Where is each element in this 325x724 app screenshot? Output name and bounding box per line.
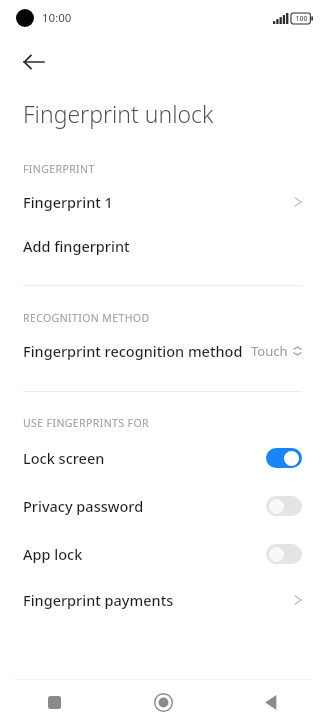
staticText: Touch xyxy=(251,342,288,360)
staticText: Lock screen xyxy=(23,448,266,468)
staticText: FINGERPRINT xyxy=(23,162,95,176)
button[interactable]: Lock screen xyxy=(0,434,325,482)
button[interactable]: Back xyxy=(217,680,325,724)
staticText: USE FINGERPRINTS FOR xyxy=(23,416,149,430)
staticText: Fingerprint recognition method xyxy=(23,341,251,361)
staticText: RECOGNITION METHOD xyxy=(23,311,150,325)
button[interactable]: Recents xyxy=(0,680,109,724)
staticText: 100 xyxy=(295,14,308,24)
button[interactable]: Fingerprint payments xyxy=(0,578,325,622)
button[interactable]: Fingerprint recognition method xyxy=(0,329,325,373)
staticText: 10:00 xyxy=(42,10,72,26)
staticText: Privacy password xyxy=(23,496,266,516)
staticText: Fingerprint payments xyxy=(23,590,294,610)
button[interactable]: Privacy password xyxy=(0,482,325,530)
button[interactable]: Home xyxy=(109,680,217,724)
staticText: App lock xyxy=(23,544,266,564)
staticText: Add fingerprint xyxy=(23,236,302,256)
button[interactable]: Add fingerprint xyxy=(0,224,325,268)
button[interactable]: App lock xyxy=(0,530,325,578)
staticText: Fingerprint unlock xyxy=(23,98,214,129)
button[interactable]: Fingerprint 1 xyxy=(0,180,325,224)
button[interactable]: Back xyxy=(14,42,54,82)
staticText: Fingerprint 1 xyxy=(23,192,294,212)
